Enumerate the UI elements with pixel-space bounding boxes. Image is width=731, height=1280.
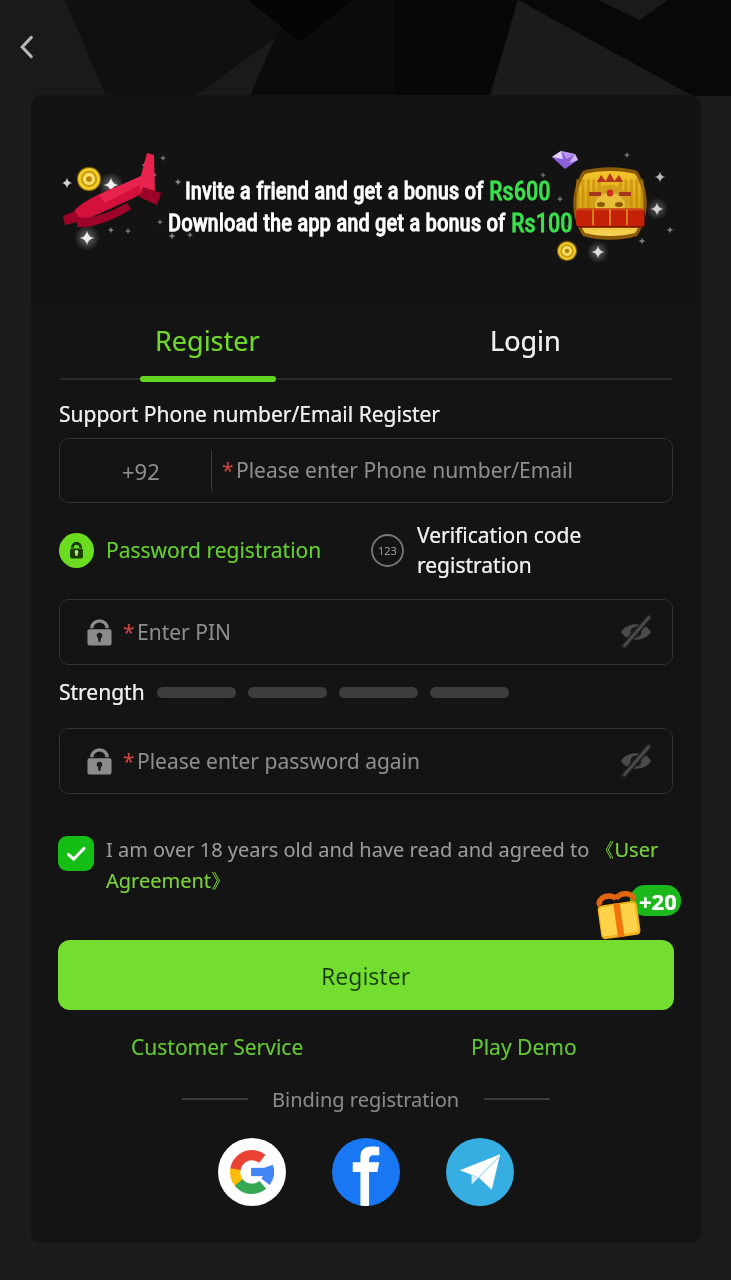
staticText: +92	[122, 456, 160, 486]
staticText: Strength	[59, 678, 145, 706]
button[interactable]: Show password	[619, 744, 653, 778]
staticText: *	[222, 456, 234, 485]
button[interactable]: Play Demo	[471, 1033, 577, 1062]
button[interactable]: *	[59, 599, 673, 665]
button[interactable]: Sign in with Facebook	[332, 1138, 400, 1206]
button[interactable]: Login	[372, 304, 678, 376]
staticText: Rs600	[489, 177, 551, 206]
staticText: Support Phone number/Email Register	[59, 400, 441, 429]
staticText: Invite a friend and get a bonus of	[185, 178, 489, 205]
staticText: 123	[378, 543, 397, 558]
button[interactable]: I am over 18 checkbox	[58, 836, 94, 871]
button[interactable]: +92	[59, 438, 673, 503]
staticText: Enter PIN	[137, 618, 231, 647]
button[interactable]: Sign in with Google	[218, 1138, 286, 1206]
staticText: Binding registration	[272, 1086, 460, 1113]
staticText: Download the app and get a bonus of	[168, 210, 511, 237]
staticText: Verification code registration	[417, 521, 582, 579]
button[interactable]: Sign in with Telegram	[446, 1138, 514, 1206]
staticText: I am over 18 years old and have read and…	[106, 836, 674, 894]
button[interactable]: Back	[4, 24, 50, 70]
staticText: Please enter password again	[137, 747, 421, 776]
staticText: Password registration	[106, 536, 322, 565]
staticText: *	[123, 747, 135, 776]
staticText: *	[123, 618, 135, 647]
staticText: Play Demo	[471, 1033, 577, 1062]
staticText: Rs100	[511, 209, 573, 238]
staticText: Customer Service	[131, 1033, 304, 1062]
staticText: Register	[321, 960, 411, 991]
staticText: Please enter Phone number/Email	[236, 456, 573, 485]
staticText: +20	[639, 886, 677, 916]
staticText: Register	[155, 322, 260, 359]
button[interactable]: Password registration	[59, 520, 370, 580]
button[interactable]: 123	[370, 520, 673, 580]
button[interactable]: Register	[54, 304, 360, 376]
staticText: Login	[490, 322, 561, 359]
button[interactable]: Show password	[619, 615, 653, 649]
button[interactable]: Register	[58, 940, 674, 1010]
button[interactable]: Customer Service	[131, 1033, 304, 1062]
button[interactable]: *	[59, 728, 673, 794]
